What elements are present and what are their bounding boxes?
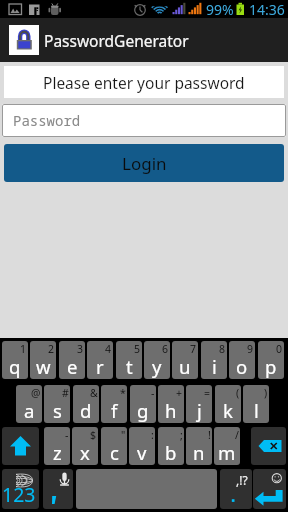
staticText: * bbox=[120, 386, 126, 400]
button[interactable]: ( bbox=[215, 385, 241, 423]
button[interactable]: 1 bbox=[2, 341, 28, 379]
button[interactable]: 7 bbox=[172, 341, 198, 379]
button[interactable]: 4 bbox=[87, 341, 113, 379]
staticText: u bbox=[179, 354, 191, 379]
button[interactable]: Punctuation bbox=[220, 469, 252, 509]
staticText: 99% bbox=[206, 0, 234, 18]
staticText: $ bbox=[90, 428, 97, 442]
staticText: 123 bbox=[2, 481, 36, 508]
staticText: m bbox=[218, 440, 236, 465]
staticText: ,!? bbox=[236, 472, 248, 488]
staticText: ( bbox=[236, 386, 240, 400]
staticText: 7 bbox=[190, 342, 197, 356]
button[interactable]: + bbox=[158, 385, 184, 423]
staticText: ! bbox=[208, 428, 211, 442]
staticText: b bbox=[165, 440, 177, 465]
button[interactable]: / bbox=[214, 427, 240, 465]
button[interactable]: # bbox=[44, 385, 70, 423]
staticText: - bbox=[151, 386, 155, 400]
staticText: + bbox=[176, 386, 183, 400]
button[interactable]: - bbox=[44, 427, 70, 465]
button[interactable]: " bbox=[101, 427, 127, 465]
button[interactable]: Password bbox=[2, 104, 286, 137]
button[interactable]: - bbox=[130, 385, 156, 423]
staticText: : bbox=[151, 428, 154, 442]
staticText: 9 bbox=[247, 342, 254, 356]
button[interactable]: Space bbox=[76, 469, 217, 509]
button[interactable]: Numbers and symbols bbox=[2, 469, 39, 509]
staticText: p bbox=[265, 354, 277, 379]
staticText: @ bbox=[31, 386, 41, 400]
staticText: n bbox=[193, 440, 205, 465]
staticText: c bbox=[110, 440, 119, 465]
staticText: ; bbox=[180, 428, 183, 442]
button[interactable]: ) bbox=[243, 385, 269, 423]
staticText: 2 bbox=[48, 342, 55, 356]
button[interactable]: Voice input bbox=[43, 469, 73, 509]
staticText: = bbox=[204, 386, 211, 400]
button[interactable]: App icon bbox=[9, 25, 39, 55]
staticText: y bbox=[152, 354, 162, 379]
button[interactable]: 9 bbox=[229, 341, 255, 379]
staticText: PasswordGenerator bbox=[44, 30, 189, 51]
staticText: 0 bbox=[276, 342, 283, 356]
staticText: z bbox=[53, 440, 62, 465]
staticText: v bbox=[137, 440, 147, 465]
button[interactable]: Login bbox=[4, 144, 284, 182]
staticText: - bbox=[65, 428, 69, 442]
button[interactable]: ! bbox=[186, 427, 212, 465]
staticText: 6 bbox=[162, 342, 169, 356]
button[interactable]: Backspace bbox=[251, 427, 286, 465]
staticText: " bbox=[121, 428, 126, 442]
staticText: e bbox=[67, 354, 78, 379]
staticText: d bbox=[80, 398, 92, 423]
button[interactable]: 6 bbox=[144, 341, 170, 379]
button[interactable]: @ bbox=[16, 385, 42, 423]
staticText: 5 bbox=[134, 342, 141, 356]
staticText: g bbox=[137, 398, 149, 423]
staticText: k bbox=[223, 398, 233, 423]
staticText: o bbox=[236, 354, 248, 379]
staticText: w bbox=[36, 354, 51, 379]
staticText: 8 bbox=[219, 342, 226, 356]
button[interactable]: & bbox=[73, 385, 99, 423]
staticText: # bbox=[62, 386, 69, 400]
staticText: & bbox=[90, 386, 98, 400]
button[interactable]: * bbox=[101, 385, 127, 423]
staticText: Password bbox=[13, 111, 81, 130]
button[interactable]: ; bbox=[158, 427, 184, 465]
staticText: q bbox=[9, 354, 21, 379]
staticText: f bbox=[111, 398, 118, 423]
staticText: ) bbox=[264, 386, 268, 400]
button[interactable]: Shift bbox=[2, 427, 39, 465]
staticText: a bbox=[24, 398, 35, 423]
button[interactable]: 3 bbox=[59, 341, 85, 379]
staticText: l bbox=[254, 398, 259, 423]
button[interactable]: Enter bbox=[253, 469, 286, 509]
button[interactable]: 8 bbox=[201, 341, 227, 379]
button[interactable]: 0 bbox=[258, 341, 284, 379]
staticText: t bbox=[126, 354, 133, 379]
staticText: r bbox=[96, 354, 104, 379]
staticText: j bbox=[197, 398, 202, 423]
staticText: / bbox=[235, 428, 239, 442]
staticText: 4 bbox=[105, 342, 112, 356]
staticText: 3 bbox=[77, 342, 84, 356]
staticText: 14:36 bbox=[249, 0, 285, 18]
button[interactable]: : bbox=[129, 427, 155, 465]
button[interactable]: 2 bbox=[30, 341, 56, 379]
button[interactable]: $ bbox=[72, 427, 98, 465]
button[interactable]: 5 bbox=[116, 341, 142, 379]
button[interactable]: = bbox=[186, 385, 212, 423]
staticText: 1 bbox=[20, 342, 27, 356]
staticText: x bbox=[80, 440, 90, 465]
staticText: Login bbox=[122, 152, 167, 175]
staticText: h bbox=[165, 398, 177, 423]
staticText: i bbox=[212, 354, 217, 379]
staticText: Please enter your password bbox=[43, 72, 245, 93]
staticText: s bbox=[53, 398, 62, 423]
